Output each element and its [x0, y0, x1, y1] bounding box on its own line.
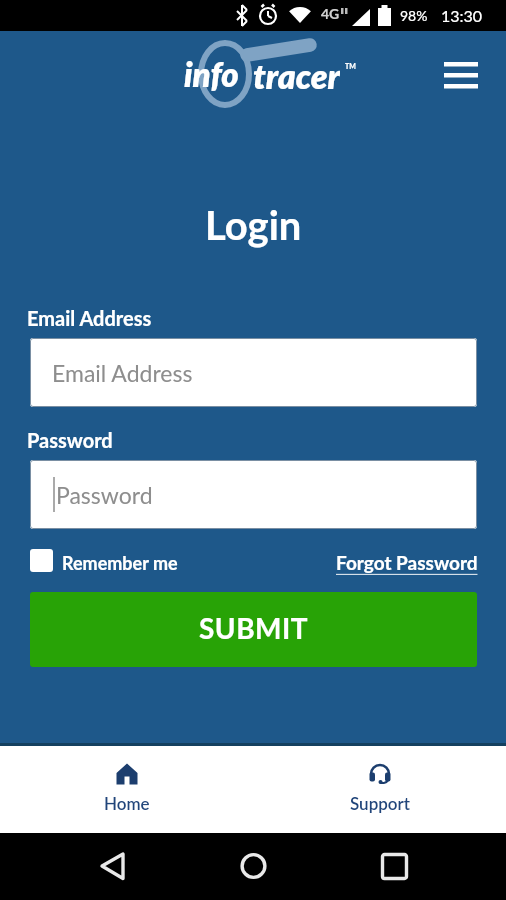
staticText: Email Address — [52, 359, 193, 387]
staticText: Home — [104, 793, 150, 813]
staticText: Password — [56, 481, 153, 509]
staticText: info — [184, 54, 239, 92]
button[interactable]: Support — [330, 746, 430, 833]
staticText: Password — [27, 428, 113, 452]
staticText: 13:30 — [441, 6, 483, 25]
staticText: SUBMIT — [199, 611, 309, 645]
button[interactable]: Email Address — [30, 338, 477, 407]
button[interactable] — [434, 53, 488, 97]
button[interactable]: Home — [77, 746, 177, 833]
staticText: Support — [350, 793, 411, 813]
staticText: Remember me — [62, 552, 178, 574]
staticText: Login — [205, 201, 302, 249]
button[interactable]: Password — [30, 460, 477, 529]
button[interactable]: SUBMIT — [30, 592, 477, 667]
button[interactable]: Forgot Password — [310, 551, 478, 574]
staticText: 98% — [400, 7, 428, 24]
staticText: 4G — [321, 5, 340, 22]
staticText: tracer — [253, 55, 340, 93]
staticText: Forgot Password — [336, 551, 478, 574]
button[interactable] — [30, 549, 53, 572]
staticText: TM — [345, 62, 356, 70]
staticText: Email Address — [27, 306, 152, 330]
